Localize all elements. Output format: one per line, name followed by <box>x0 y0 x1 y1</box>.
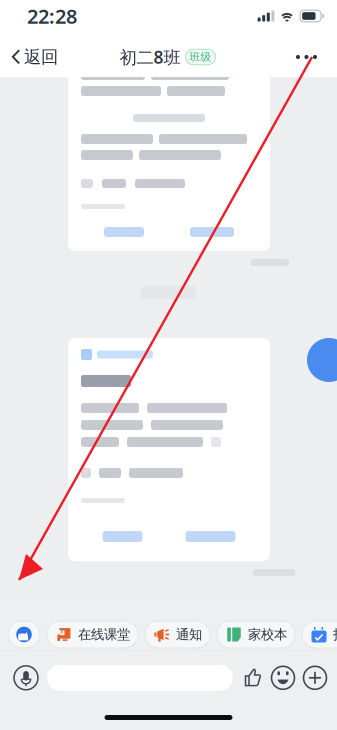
staticText: 返回 <box>24 46 58 68</box>
staticText: 家校本 <box>248 626 287 643</box>
button[interactable]: 家校本 <box>217 621 295 648</box>
staticText: 初二8班 <box>119 45 180 68</box>
button[interactable]: Assistant <box>8 621 40 648</box>
staticText: 班级 <box>189 50 211 63</box>
button[interactable]: Like <box>239 665 267 691</box>
button[interactable]: More options <box>280 37 337 77</box>
staticText: 通知 <box>176 626 202 643</box>
button[interactable]: Voice message <box>9 661 43 695</box>
button[interactable]: 打卡 <box>302 621 337 648</box>
staticText: 打卡 <box>333 626 337 643</box>
button[interactable]: 返回 <box>0 37 70 77</box>
button[interactable]: Emoji <box>267 665 299 691</box>
button[interactable]: 在线课堂 <box>47 621 138 648</box>
staticText: 22:28 <box>27 3 77 29</box>
button[interactable]: Add attachment <box>299 665 331 691</box>
staticText: 在线课堂 <box>78 626 130 643</box>
button[interactable]: 通知 <box>145 621 210 648</box>
